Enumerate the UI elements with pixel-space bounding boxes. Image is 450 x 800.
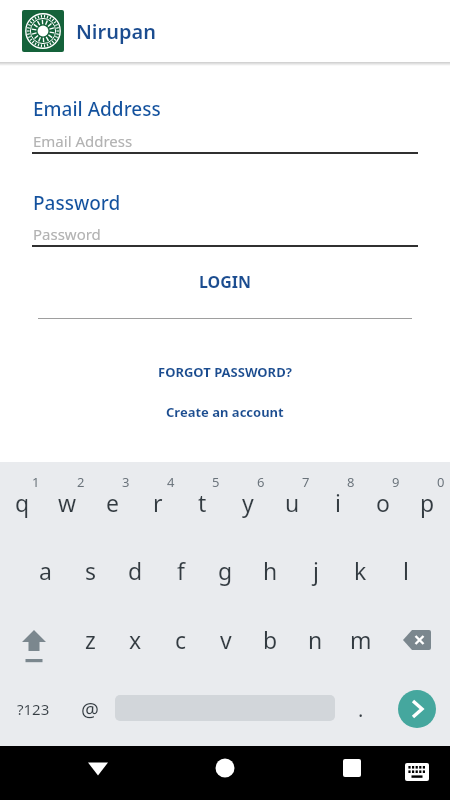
staticText: . bbox=[358, 696, 364, 723]
button[interactable]: m bbox=[338, 605, 383, 674]
button[interactable]: 4 bbox=[135, 468, 180, 536]
staticText: 6 bbox=[257, 473, 265, 491]
staticText: Email Address bbox=[33, 131, 133, 151]
staticText: y bbox=[242, 487, 254, 518]
staticText: m bbox=[350, 624, 372, 655]
staticText: ?123 bbox=[17, 699, 50, 719]
button[interactable] bbox=[383, 605, 450, 674]
button[interactable]: 9 bbox=[360, 468, 405, 536]
staticText: n bbox=[308, 624, 323, 655]
staticText: Password bbox=[33, 224, 101, 244]
staticText: 4 bbox=[167, 473, 175, 491]
staticText: e bbox=[106, 487, 119, 518]
staticText: l bbox=[403, 555, 409, 586]
staticText: f bbox=[177, 555, 185, 586]
button[interactable]: n bbox=[293, 605, 338, 674]
staticText: q bbox=[15, 487, 30, 518]
staticText: 8 bbox=[347, 473, 355, 491]
button[interactable]: x bbox=[113, 605, 158, 674]
staticText: t bbox=[198, 487, 207, 518]
staticText: 5 bbox=[212, 473, 220, 491]
button[interactable]: 5 bbox=[180, 468, 225, 536]
button[interactable]: 8 bbox=[315, 468, 360, 536]
button[interactable] bbox=[86, 756, 110, 780]
staticText: 9 bbox=[392, 473, 400, 491]
button[interactable]: 3 bbox=[90, 468, 135, 536]
staticText: x bbox=[129, 624, 142, 655]
staticText: 3 bbox=[122, 473, 130, 491]
staticText: w bbox=[58, 487, 77, 518]
button[interactable]: FORGOT PASSWORD? bbox=[158, 363, 292, 381]
button[interactable]: 6 bbox=[225, 468, 270, 536]
staticText: Create an account bbox=[166, 403, 284, 421]
button[interactable]: c bbox=[158, 605, 203, 674]
staticText: a bbox=[39, 555, 52, 586]
button[interactable]: d bbox=[113, 536, 158, 605]
staticText: i bbox=[335, 487, 341, 518]
staticText: o bbox=[376, 487, 390, 518]
staticText: 0 bbox=[437, 473, 445, 491]
button[interactable]: s bbox=[68, 536, 113, 605]
staticText: z bbox=[85, 624, 96, 655]
staticText: k bbox=[354, 555, 367, 586]
staticText: h bbox=[263, 555, 278, 586]
button[interactable]: Create an account bbox=[166, 403, 284, 421]
staticText: Email Address bbox=[33, 96, 161, 122]
staticText: j bbox=[313, 555, 319, 586]
button[interactable]: a bbox=[22, 536, 68, 605]
button[interactable]: Password bbox=[0, 224, 450, 244]
staticText: d bbox=[128, 555, 143, 586]
button[interactable]: k bbox=[338, 536, 383, 605]
button[interactable]: 2 bbox=[45, 468, 90, 536]
staticText: Nirupan bbox=[76, 18, 156, 45]
button[interactable]: LOGIN bbox=[199, 271, 252, 293]
button[interactable]: @ bbox=[67, 674, 112, 744]
staticText: v bbox=[220, 624, 232, 655]
staticText: s bbox=[85, 555, 97, 586]
button[interactable]: z bbox=[67, 605, 113, 674]
staticText: r bbox=[153, 487, 163, 518]
button[interactable]: ?123 bbox=[0, 674, 67, 744]
staticText: FORGOT PASSWORD? bbox=[158, 363, 292, 381]
staticText: Password bbox=[33, 190, 121, 216]
staticText: c bbox=[175, 624, 187, 655]
button[interactable]: g bbox=[203, 536, 248, 605]
staticText: b bbox=[263, 624, 278, 655]
staticText: 7 bbox=[302, 473, 310, 491]
button[interactable]: h bbox=[248, 536, 293, 605]
button[interactable]: . bbox=[338, 674, 383, 744]
button[interactable]: l bbox=[383, 536, 428, 605]
staticText: @ bbox=[81, 696, 99, 723]
staticText: p bbox=[420, 487, 435, 518]
staticText: LOGIN bbox=[199, 271, 252, 293]
button[interactable] bbox=[213, 756, 237, 780]
staticText: u bbox=[285, 487, 300, 518]
staticText: g bbox=[218, 555, 233, 586]
button[interactable] bbox=[398, 690, 436, 728]
button[interactable]: j bbox=[293, 536, 338, 605]
button[interactable]: 7 bbox=[270, 468, 315, 536]
button[interactable]: b bbox=[248, 605, 293, 674]
button[interactable]: 1 bbox=[0, 468, 45, 536]
button[interactable]: v bbox=[203, 605, 248, 674]
button[interactable] bbox=[383, 674, 450, 744]
button[interactable] bbox=[404, 762, 430, 782]
button[interactable] bbox=[340, 756, 364, 780]
button[interactable]: f bbox=[158, 536, 203, 605]
staticText: 1 bbox=[32, 473, 40, 491]
button[interactable]: 0 bbox=[405, 468, 450, 536]
button[interactable]: Email Address bbox=[0, 131, 450, 151]
button[interactable] bbox=[0, 605, 67, 674]
staticText: 2 bbox=[77, 473, 85, 491]
